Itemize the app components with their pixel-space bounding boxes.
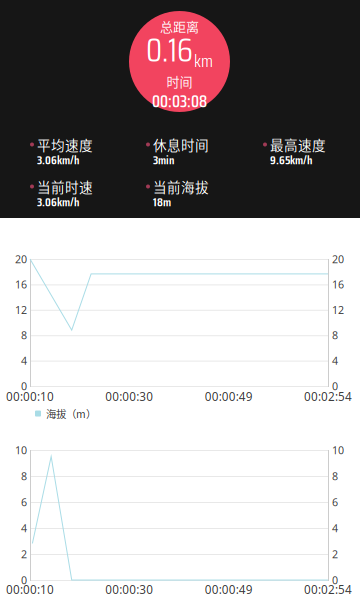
button[interactable]: 总距离 [129,11,230,112]
staticText: 0.16 [146,24,193,76]
staticText: 3min [153,151,174,169]
staticText: 总距离 [160,16,199,35]
staticText: 00:00:49 [205,581,253,597]
staticText: 当前时速 [37,177,93,196]
staticText: 18m [153,193,171,211]
button[interactable]: 最高速度 [263,135,326,166]
staticText: 12 [332,302,344,317]
staticText: 平均速度 [37,135,93,154]
staticText: 10 [332,443,344,457]
staticText: 4 [21,521,27,535]
staticText: 00:00:10 [6,581,54,597]
button[interactable]: 海拔（m） [35,406,96,421]
staticText: 海拔（m） [46,406,96,421]
staticText: 6 [21,495,27,509]
button[interactable]: 平均速度 [30,135,93,166]
staticText: 20 [332,252,344,266]
staticText: 00:03:08 [152,88,207,115]
staticText: 休息时间 [153,135,209,154]
staticText: 8 [21,328,27,342]
staticText: 0 [332,573,338,587]
staticText: 时间 [166,71,192,90]
staticText: 最高速度 [270,135,326,154]
button[interactable]: 当前海拔 [146,177,209,208]
staticText: 9.65km/h [270,151,312,169]
staticText: 12 [15,302,27,317]
staticText: km [194,47,213,75]
staticText: 0 [21,573,27,587]
staticText: 10 [15,443,27,457]
staticText: 8 [332,469,338,483]
staticText: 8 [21,469,27,483]
staticText: 00:00:49 [205,388,253,404]
staticText: 20 [15,252,27,266]
staticText: 当前海拔 [153,177,209,196]
staticText: 6 [332,495,338,509]
staticText: 0 [332,379,338,393]
button[interactable]: 当前时速 [30,177,93,208]
staticText: 4 [21,353,27,368]
staticText: 16 [15,277,27,292]
staticText: 0 [21,379,27,393]
staticText: 00:00:10 [6,388,54,404]
staticText: 3.06km/h [37,151,79,169]
staticText: 00:00:30 [105,581,153,597]
staticText: 00:02:54 [304,581,352,597]
button[interactable]: 休息时间 [146,135,209,166]
staticText: 2 [21,547,27,561]
staticText: 3.06km/h [37,193,79,211]
staticText: 4 [332,353,338,368]
staticText: 00:00:30 [105,388,153,404]
staticText: 8 [332,328,338,342]
staticText: 16 [332,277,344,292]
staticText: 4 [332,521,338,535]
staticText: 00:02:54 [304,388,352,404]
staticText: 2 [332,547,338,561]
